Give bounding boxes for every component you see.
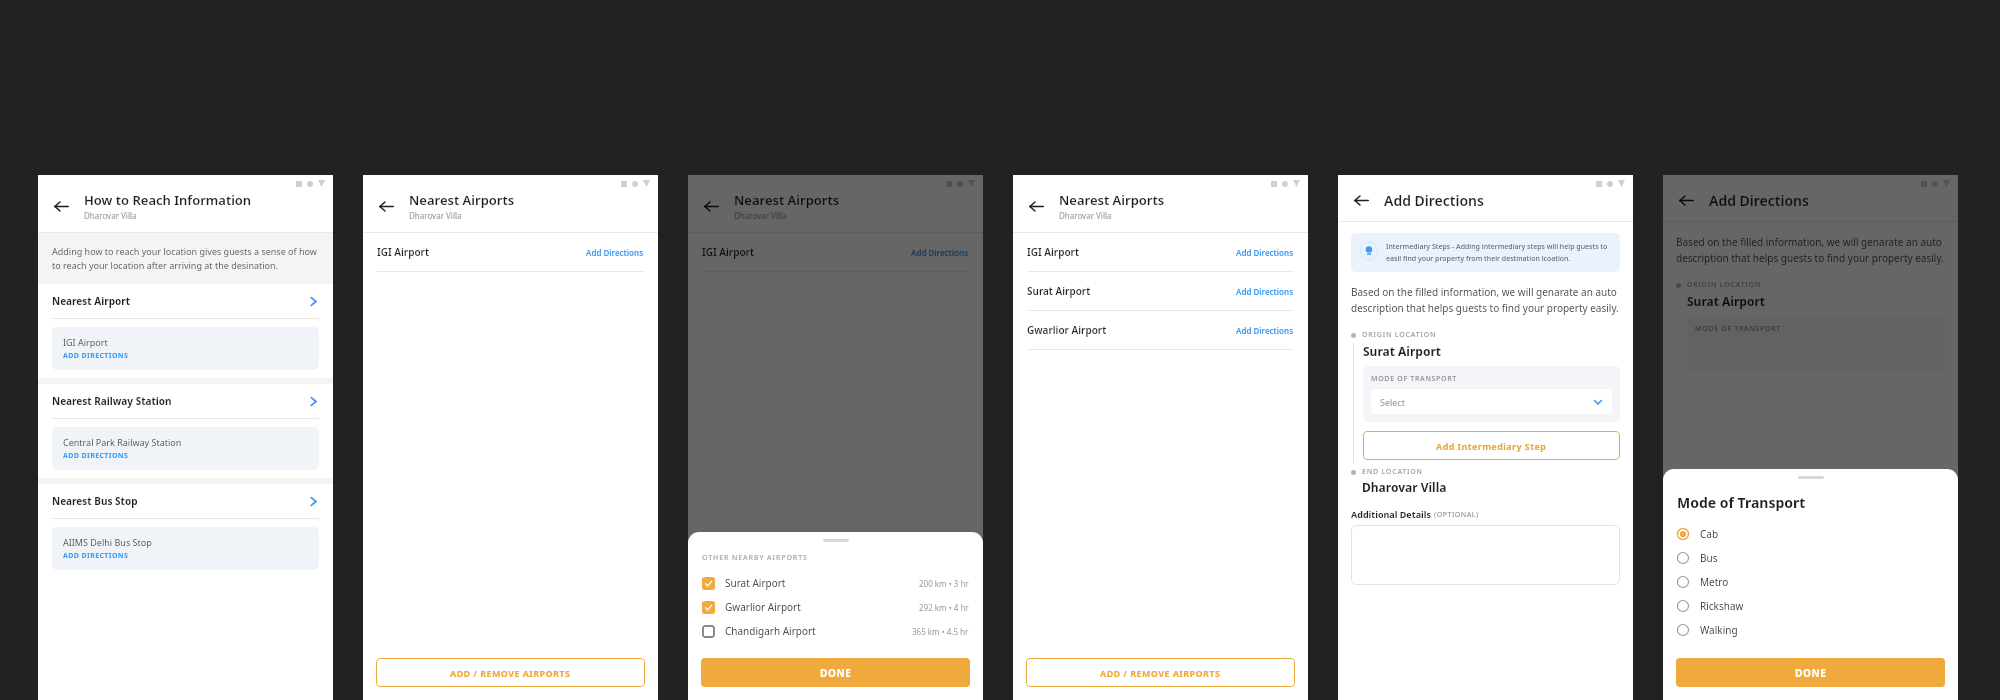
staticText: IGI Airport	[63, 336, 108, 348]
button[interactable]: DONE	[701, 658, 970, 687]
staticText: How to Reach Information	[84, 191, 252, 209]
button[interactable]: AIIMS Delhi Bus Stop	[52, 527, 319, 570]
staticText: MODE OF TRANSPORT	[1695, 324, 1781, 334]
button[interactable]: Gwarlior Airport	[688, 595, 983, 619]
staticText: Add Directions	[1236, 325, 1294, 336]
staticText: Surat Airport	[1687, 293, 1765, 309]
staticText: Walking	[1700, 623, 1738, 637]
staticText: ADD DIRECTIONS	[63, 451, 129, 461]
staticText: Nearest Bus Stop	[52, 494, 138, 508]
other: Expand	[1593, 397, 1603, 407]
button[interactable]: Back	[1027, 197, 1046, 216]
button[interactable]: Back	[377, 197, 396, 216]
staticText: ORIGIN LOCATION	[1687, 280, 1762, 290]
staticText: Rickshaw	[1700, 599, 1744, 613]
staticText: ADD DIRECTIONS	[63, 351, 129, 361]
staticText: Gwarlior Airport	[1027, 323, 1107, 337]
button[interactable]: Metro	[1663, 570, 1958, 594]
staticText: Select	[1380, 396, 1405, 408]
other: Back	[704, 199, 719, 214]
button[interactable]: Nearest Airport	[38, 284, 333, 318]
staticText: ADD DIRECTIONS	[63, 551, 129, 561]
other: Back	[1679, 193, 1694, 208]
staticText: Add Directions	[1384, 191, 1484, 210]
staticText: MODE OF TRANSPORT	[1371, 374, 1457, 384]
staticText: Nearest Railway Station	[52, 394, 172, 408]
staticText: 365 km • 4.5 hr	[912, 626, 969, 637]
button[interactable]: Walking	[1663, 618, 1958, 642]
staticText: Add Intermediary Step	[1436, 440, 1547, 452]
staticText: 292 km • 4 hr	[919, 602, 969, 613]
staticText: OTHER NEARBY AIRPORTS	[702, 553, 808, 563]
staticText: IGI Airport	[377, 245, 429, 259]
staticText: Nearest Airport	[52, 294, 131, 308]
staticText: Dharovar Villa	[409, 210, 462, 221]
button[interactable]: Nearest Bus Stop	[38, 484, 333, 518]
staticText: Central Park Railway Station	[63, 436, 182, 448]
staticText: Chandigarh Airport	[725, 624, 816, 638]
button[interactable]: Back	[1352, 191, 1371, 210]
button[interactable]: IGI Airport	[52, 327, 319, 370]
button[interactable]: ADD / REMOVE AIRPORTS	[376, 658, 645, 687]
staticText: Dharovar Villa	[84, 210, 137, 221]
staticText: Intermediary Steps - Adding intermediary…	[1386, 242, 1611, 263]
other: Back	[379, 199, 394, 214]
staticText: DONE	[820, 666, 852, 680]
other: Back	[1354, 193, 1369, 208]
staticText: Surat Airport	[725, 576, 786, 590]
button[interactable]: Gwarlior Airport	[1013, 311, 1308, 349]
button[interactable]: Chandigarh Airport	[688, 619, 983, 643]
staticText: IGI Airport	[1027, 245, 1079, 259]
staticText: Based on the filled information, we will…	[1676, 235, 1945, 264]
button[interactable]: Central Park Railway Station	[52, 427, 319, 470]
button[interactable]: Surat Airport	[688, 571, 983, 595]
staticText: Cab	[1700, 527, 1719, 541]
staticText: Nearest Airports	[1059, 191, 1165, 209]
staticText: Additional Details	[1351, 508, 1434, 520]
staticText: 200 km • 3 hr	[919, 578, 969, 589]
staticText: Adding how to reach your location gives …	[52, 245, 319, 272]
staticText: Nearest Airports	[734, 191, 840, 209]
staticText: ADD / REMOVE AIRPORTS	[450, 667, 571, 679]
button[interactable]: Back	[702, 197, 721, 216]
staticText: Dharovar Villa	[1059, 210, 1112, 221]
staticText: Surat Airport	[1027, 284, 1091, 298]
other: Back	[54, 199, 69, 214]
button[interactable]: IGI Airport	[688, 233, 983, 271]
staticText: Gwarlior Airport	[725, 600, 801, 614]
button[interactable]: Back	[52, 197, 71, 216]
staticText: Nearest Airports	[409, 191, 515, 209]
button[interactable]: Nearest Railway Station	[38, 384, 333, 418]
staticText: AIIMS Delhi Bus Stop	[63, 536, 152, 548]
button[interactable]: Back	[1677, 191, 1696, 210]
staticText: Surat Airport	[1363, 343, 1441, 359]
button[interactable]: Rickshaw	[1663, 594, 1958, 618]
staticText: (OPTIONAL)	[1434, 510, 1479, 520]
button[interactable]: IGI Airport	[1013, 233, 1308, 271]
button[interactable]: IGI Airport	[363, 233, 658, 271]
staticText: DONE	[1795, 666, 1827, 680]
staticText: Add Directions	[1236, 286, 1294, 297]
button[interactable]: Surat Airport	[1013, 272, 1308, 310]
staticText: Add Directions	[1236, 247, 1294, 258]
button[interactable]: Add Intermediary Step	[1363, 431, 1620, 460]
staticText: Add Directions	[1709, 191, 1809, 210]
other: Back	[1029, 199, 1044, 214]
button[interactable]: Bus	[1663, 546, 1958, 570]
staticText: Add Directions	[911, 247, 969, 258]
button[interactable]: Cab	[1663, 522, 1958, 546]
button[interactable]	[1351, 525, 1620, 585]
staticText: Dharovar Villa	[1362, 479, 1447, 495]
staticText: END LOCATION	[1362, 467, 1423, 477]
staticText: ADD / REMOVE AIRPORTS	[1100, 667, 1221, 679]
staticText: Mode of Transport	[1677, 493, 1806, 512]
staticText: Based on the filled information, we will…	[1351, 285, 1620, 314]
button[interactable]: Select	[1371, 389, 1612, 414]
staticText: Dharovar Villa	[734, 210, 787, 221]
staticText: ORIGIN LOCATION	[1362, 330, 1437, 340]
staticText: IGI Airport	[702, 245, 754, 259]
staticText: Bus	[1700, 551, 1718, 565]
button[interactable]: ADD / REMOVE AIRPORTS	[1026, 658, 1295, 687]
staticText: Metro	[1700, 575, 1729, 589]
button[interactable]: DONE	[1676, 658, 1945, 687]
